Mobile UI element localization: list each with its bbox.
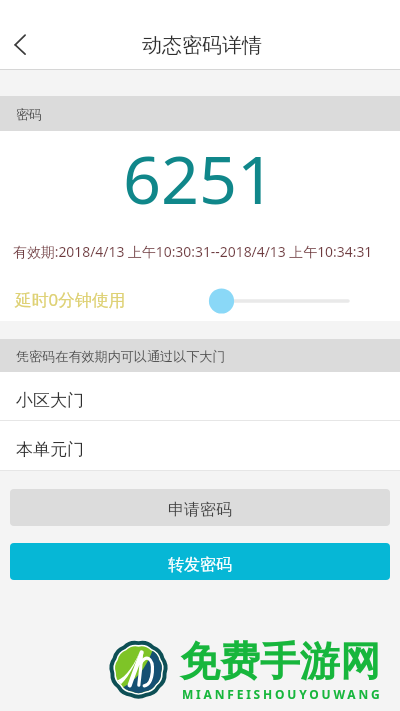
staticText: 申请密码	[168, 500, 232, 520]
staticText: 延时0分钟使用	[15, 288, 126, 311]
button[interactable]: Back	[0, 21, 40, 68]
staticText: 小区大门	[16, 390, 84, 411]
staticText: 动态密码详情	[2, 33, 400, 58]
staticText: 免费手游网	[180, 636, 380, 686]
staticText: 转发密码	[168, 555, 232, 575]
staticText: MIANFEISHOUYOUWANG	[182, 686, 383, 702]
button[interactable]: 小区大门	[0, 372, 400, 420]
staticText: 密码	[16, 106, 42, 122]
button[interactable]: 转发密码	[10, 543, 390, 580]
button[interactable]: 本单元门	[0, 421, 400, 470]
staticText: 凭密码在有效期内可以通过以下大门	[16, 348, 226, 365]
staticText: 6251	[0, 133, 399, 224]
button[interactable]: 申请密码	[10, 489, 390, 526]
staticText: 有效期:2018/4/13 上午10:30:31--2018/4/13 上午10…	[13, 242, 373, 261]
staticText: 本单元门	[16, 439, 84, 460]
button[interactable]: Delay slider	[205, 286, 365, 316]
